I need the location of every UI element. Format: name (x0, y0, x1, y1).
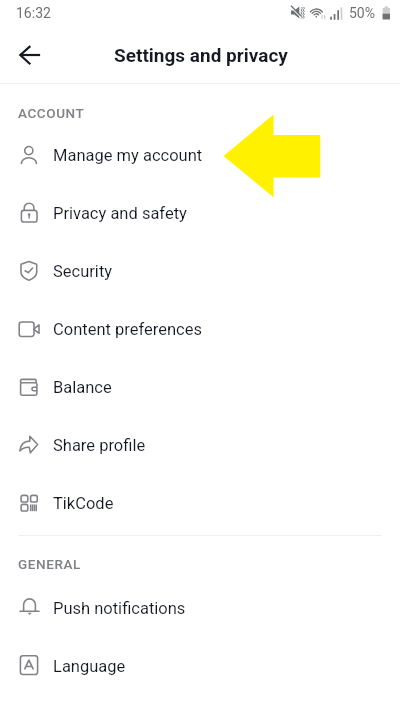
staticText: Privacy and safety (53, 204, 187, 223)
button[interactable]: Balance (0, 358, 400, 416)
staticText: ACCOUNT (18, 105, 85, 121)
button[interactable]: Share profile (0, 416, 400, 474)
button[interactable]: Push notifications (0, 579, 400, 637)
staticText: Push notifications (53, 599, 186, 618)
staticText: Content preferences (53, 320, 202, 339)
button[interactable]: TikCode (0, 474, 400, 532)
staticText: GENERAL (18, 556, 81, 572)
button[interactable]: Security (0, 242, 400, 300)
staticText: Security (53, 262, 113, 281)
button[interactable]: Language (0, 637, 400, 695)
staticText: Share profile (53, 436, 146, 455)
button[interactable]: Content preferences (0, 300, 400, 358)
staticText: 50% (349, 5, 375, 21)
staticText: Settings and privacy (114, 44, 288, 66)
button[interactable]: Back (7, 32, 53, 78)
button[interactable]: Manage my account (0, 126, 400, 184)
staticText: Balance (53, 378, 112, 397)
staticText: TikCode (53, 494, 114, 513)
staticText: Language (53, 657, 126, 676)
staticText: 16:32 (16, 5, 51, 21)
button[interactable]: Privacy and safety (0, 184, 400, 242)
staticText: Manage my account (53, 146, 203, 165)
